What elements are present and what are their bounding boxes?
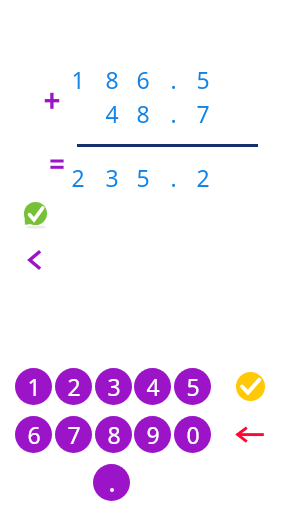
staticText: 3: [107, 371, 121, 402]
staticText: 2: [196, 162, 210, 192]
staticText: 4: [105, 98, 119, 128]
staticText: 7: [67, 419, 81, 450]
staticText: 9: [146, 419, 160, 450]
button[interactable]: 3: [95, 368, 132, 405]
staticText: .: [170, 162, 177, 192]
button[interactable]: 1: [15, 368, 52, 405]
button[interactable]: 9: [134, 416, 171, 453]
staticText: 4: [146, 371, 160, 402]
button[interactable]: 5: [174, 368, 211, 405]
button[interactable]: 4: [134, 368, 171, 405]
staticText: 3: [105, 162, 119, 192]
button[interactable]: 8: [95, 416, 132, 453]
staticText: 8: [105, 64, 119, 94]
staticText: 5: [186, 371, 200, 402]
button[interactable]: 0: [174, 416, 211, 453]
staticText: 5: [136, 162, 150, 192]
staticText: .: [170, 98, 177, 128]
staticText: .: [170, 64, 177, 94]
staticText: 1: [27, 371, 41, 402]
button[interactable]: Back: [27, 249, 43, 271]
button[interactable]: 7: [55, 416, 92, 453]
staticText: 2: [71, 162, 85, 192]
staticText: 8: [136, 98, 150, 128]
button[interactable]: Backspace: [235, 425, 265, 445]
button[interactable]: Check answer: [236, 372, 265, 401]
button[interactable]: Decimal point: [93, 464, 130, 501]
staticText: 5: [196, 64, 210, 94]
staticText: 1: [71, 64, 85, 94]
button[interactable]: 6: [15, 416, 52, 453]
staticText: 6: [27, 419, 41, 450]
button[interactable]: 2: [55, 368, 92, 405]
staticText: 6: [136, 64, 150, 94]
staticText: 8: [107, 419, 121, 450]
staticText: 7: [196, 98, 210, 128]
staticText: 0: [186, 419, 200, 450]
staticText: 2: [67, 371, 81, 402]
